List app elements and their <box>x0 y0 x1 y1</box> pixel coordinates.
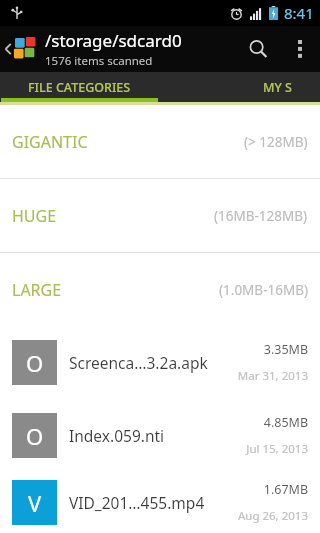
staticText: 1576 items scanned <box>45 53 153 69</box>
button[interactable]: LARGE <box>0 253 320 326</box>
staticText: O <box>26 348 44 378</box>
button[interactable]: More options <box>280 29 320 69</box>
staticText: HUGE <box>12 205 57 227</box>
staticText: (1.0MB-16MB) <box>219 281 308 299</box>
button[interactable]: MY S <box>159 72 320 102</box>
button[interactable]: GIGANTIC <box>0 105 320 178</box>
button[interactable]: Navigate up <box>0 38 41 60</box>
button[interactable]: Search <box>236 27 280 71</box>
staticText: 1.67MB <box>263 481 308 498</box>
staticText: Mar 31, 2013 <box>237 368 308 384</box>
staticText: MY S <box>263 79 292 96</box>
button[interactable]: V <box>0 472 320 533</box>
button[interactable]: FILE CATEGORIES <box>0 72 159 102</box>
staticText: LARGE <box>12 279 62 301</box>
staticText: Jul 15, 2013 <box>246 441 308 457</box>
staticText: V <box>28 488 42 518</box>
staticText: /storage/sdcard0 <box>45 29 182 52</box>
staticText: GIGANTIC <box>12 131 88 153</box>
staticText: FILE CATEGORIES <box>28 79 131 96</box>
staticText: 3.35MB <box>263 341 308 358</box>
staticText: (16MB-128MB) <box>214 207 308 225</box>
button[interactable]: HUGE <box>0 179 320 252</box>
button[interactable]: O <box>0 399 320 472</box>
staticText: Index.059.nti <box>69 425 246 446</box>
staticText: (> 128MB) <box>244 133 308 151</box>
staticText: Screenca…3.2a.apk <box>69 352 237 373</box>
button[interactable]: O <box>0 326 320 399</box>
staticText: Aug 26, 2013 <box>237 508 308 524</box>
staticText: 4.85MB <box>263 414 308 431</box>
staticText: VID_201…455.mp4 <box>69 492 237 513</box>
staticText: 8:41 <box>284 3 314 23</box>
staticText: O <box>26 421 44 451</box>
